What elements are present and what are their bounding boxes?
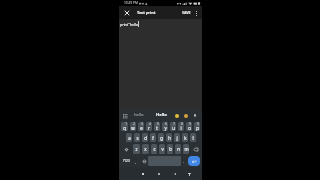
staticText: i <box>180 125 182 131</box>
staticText: m <box>184 146 189 152</box>
button[interactable]: b <box>167 144 173 154</box>
staticText: y <box>164 125 167 131</box>
staticText: f <box>152 135 154 141</box>
staticText: s <box>136 135 139 141</box>
staticText: x <box>144 146 147 152</box>
button[interactable]: Hello <box>150 109 172 121</box>
staticText: p <box>196 125 199 131</box>
button[interactable]: c <box>151 144 157 154</box>
button[interactable]: More options <box>192 9 200 17</box>
staticText: ?123 <box>123 159 130 163</box>
button[interactable]: Switch keyboard <box>184 169 194 179</box>
staticText: d <box>144 135 147 141</box>
staticText: q <box>123 125 126 131</box>
staticText: 5 <box>157 122 159 126</box>
button[interactable]: Emoji <box>172 111 181 120</box>
button[interactable]: , <box>132 155 140 167</box>
button[interactable]: Back <box>170 169 180 179</box>
button[interactable]: hello <box>128 109 150 121</box>
staticText: n <box>177 146 180 152</box>
staticText: r <box>148 125 150 131</box>
button[interactable]: 9 <box>186 122 192 131</box>
button[interactable]: Shift <box>120 143 132 155</box>
button[interactable]: z <box>133 144 140 154</box>
button[interactable]: d <box>142 133 148 142</box>
button[interactable]: a <box>126 133 132 142</box>
button[interactable]: g <box>158 133 164 142</box>
button[interactable]: j <box>174 133 180 142</box>
staticText: g <box>160 135 163 141</box>
button[interactable]: Enter <box>188 156 200 166</box>
button[interactable]: s <box>134 133 140 142</box>
staticText: k <box>184 135 187 141</box>
staticText: Text print <box>137 10 156 15</box>
staticText: , <box>135 159 137 164</box>
button[interactable]: Backspace <box>190 143 201 155</box>
staticText: v <box>161 146 164 152</box>
staticText: . <box>183 159 185 164</box>
staticText: 8 <box>181 122 183 126</box>
staticText: 4 <box>149 122 151 126</box>
button[interactable]: n <box>175 144 181 154</box>
button[interactable]: f <box>150 133 156 142</box>
staticText: print"hello <box>120 22 138 27</box>
button[interactable]: k <box>182 133 188 142</box>
button[interactable]: Voice input <box>190 111 199 120</box>
staticText: e <box>140 125 143 131</box>
button[interactable]: . <box>181 155 187 167</box>
staticText: c <box>153 146 156 152</box>
staticText: j <box>176 135 178 141</box>
staticText: u <box>172 125 175 131</box>
button[interactable]: x <box>142 144 149 154</box>
button[interactable]: 2 <box>130 122 136 131</box>
button[interactable]: 1 <box>121 122 128 131</box>
staticText: w <box>131 125 135 131</box>
button[interactable]: 0 <box>194 122 200 131</box>
button[interactable]: m <box>183 144 189 154</box>
button[interactable]: 6 <box>162 122 168 131</box>
button[interactable]: Switch language <box>140 155 148 167</box>
button[interactable]: 7 <box>170 122 176 131</box>
staticText: 0 <box>197 122 199 126</box>
staticText: 9 <box>189 122 191 126</box>
staticText: l <box>192 135 194 141</box>
button[interactable]: ?123 <box>120 155 132 167</box>
button[interactable]: 3 <box>138 122 144 131</box>
staticText: b <box>169 146 172 152</box>
staticText: 2 <box>133 122 135 126</box>
button[interactable]: 5 <box>154 122 160 131</box>
staticText: Hello <box>156 112 167 118</box>
button[interactable]: v <box>159 144 165 154</box>
button[interactable]: Recents <box>138 169 148 179</box>
button[interactable]: SAVE <box>181 8 192 17</box>
staticText: SAVE <box>182 10 191 15</box>
button[interactable]: Home <box>154 169 164 179</box>
staticText: 6 <box>165 122 167 126</box>
staticText: o <box>188 125 191 131</box>
button[interactable]: 8 <box>178 122 184 131</box>
staticText: a <box>128 135 131 141</box>
staticText: 7 <box>173 122 175 126</box>
staticText: h <box>168 135 171 141</box>
button[interactable]: Stickers <box>181 111 190 120</box>
staticText: t <box>156 125 158 131</box>
staticText: hello <box>134 112 144 118</box>
button[interactable]: Close <box>122 8 131 17</box>
staticText: 10:29 PM <box>124 1 138 5</box>
button[interactable]: Toolbar <box>121 112 128 119</box>
staticText: 3 <box>141 122 143 126</box>
button[interactable]: 4 <box>146 122 152 131</box>
button[interactable]: h <box>166 133 172 142</box>
staticText: 1 <box>125 122 127 126</box>
staticText: z <box>135 146 138 152</box>
button[interactable]: l <box>190 133 196 142</box>
